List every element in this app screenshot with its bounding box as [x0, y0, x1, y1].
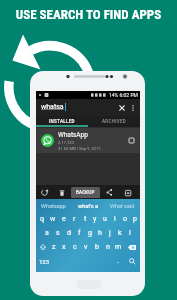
staticText: o [123, 215, 127, 223]
staticText: y [93, 215, 97, 223]
button[interactable]: Backspace [124, 240, 140, 254]
staticText: g [88, 229, 92, 237]
staticText: a [45, 229, 49, 237]
button[interactable]: p [130, 212, 140, 226]
staticText: . [117, 257, 119, 265]
button[interactable]: i [110, 212, 120, 226]
button[interactable]: ARCHIVED [88, 116, 140, 127]
staticText: BACKUP [76, 190, 95, 195]
button[interactable]: r [69, 212, 80, 226]
staticText: p [133, 215, 137, 223]
button[interactable]: m [113, 240, 124, 254]
button[interactable]: Delete [56, 187, 67, 198]
staticText: b [95, 243, 99, 251]
button[interactable]: Shift [36, 240, 49, 254]
button[interactable]: w [47, 212, 58, 226]
staticText: INSTALLED [49, 119, 75, 124]
button[interactable]: Clear search [116, 102, 128, 114]
button[interactable]: Numbers [36, 254, 52, 268]
button[interactable]: WhatsApp [36, 128, 140, 153]
staticText: ARCHIVED [102, 119, 127, 124]
staticText: 2.17.323 [58, 140, 75, 145]
button[interactable]: a [41, 226, 52, 240]
staticText: USE SEARCH TO FIND APPS [0, 7, 177, 22]
button[interactable]: e [58, 212, 69, 226]
button[interactable]: What said [105, 200, 140, 212]
staticText: i [114, 215, 116, 223]
button[interactable]: k [115, 226, 125, 240]
button[interactable]: Select WhatsApp [127, 136, 136, 145]
button[interactable]: c [69, 240, 80, 254]
staticText: Whatsapp [41, 203, 66, 209]
button[interactable]: l [125, 226, 135, 240]
staticText: 31.06 MB | Sep 9, 2017 [58, 146, 101, 151]
staticText: u [103, 215, 107, 223]
staticText: t [84, 215, 87, 223]
staticText: z [52, 243, 56, 251]
staticText: whatsa [41, 103, 64, 111]
button[interactable]: . [112, 254, 124, 268]
staticText: what's a [78, 203, 98, 209]
staticText: What said [110, 203, 135, 209]
staticText: k [118, 229, 122, 237]
button[interactable]: h [95, 226, 105, 240]
staticText: r [73, 215, 76, 223]
button[interactable]: u [100, 212, 110, 226]
button[interactable]: what's a [70, 200, 105, 212]
button[interactable]: g [85, 226, 95, 240]
staticText: f [78, 229, 81, 237]
staticText: x [62, 243, 66, 251]
staticText: e [62, 215, 66, 223]
staticText: v [84, 243, 88, 251]
staticText: l [129, 229, 131, 237]
button[interactable]: Share [104, 187, 115, 198]
staticText: c [73, 243, 77, 251]
button[interactable]: Whatsapp [36, 200, 70, 212]
staticText: WhatsApp [58, 131, 88, 139]
button[interactable]: q [36, 212, 47, 226]
staticText: 123 [39, 258, 50, 265]
button[interactable]: s [52, 226, 63, 240]
button[interactable]: n [102, 240, 113, 254]
button[interactable]: Search [124, 254, 140, 268]
button[interactable]: b [91, 240, 102, 254]
button[interactable]: Refresh [39, 187, 50, 198]
button[interactable]: j [105, 226, 115, 240]
button[interactable]: d [63, 226, 74, 240]
staticText: h [98, 229, 102, 237]
button[interactable]: v [80, 240, 91, 254]
button[interactable]: o [120, 212, 130, 226]
button[interactable]: BACKUP [71, 187, 100, 198]
staticText: m [115, 243, 122, 251]
button[interactable]: y [90, 212, 100, 226]
staticText: n [106, 243, 110, 251]
button[interactable]: x [59, 240, 69, 254]
staticText: 14% 6:02 PM [109, 92, 138, 98]
staticText: j [109, 229, 111, 237]
button[interactable]: Archive [122, 187, 133, 198]
button[interactable]: t [80, 212, 90, 226]
button[interactable]: z [49, 240, 59, 254]
staticText: q [40, 215, 44, 223]
button[interactable]: f [74, 226, 85, 240]
button[interactable]: INSTALLED [36, 116, 88, 127]
staticText: d [67, 229, 71, 237]
button[interactable]: More options [128, 103, 138, 113]
staticText: w [50, 215, 56, 223]
staticText: s [56, 229, 60, 237]
